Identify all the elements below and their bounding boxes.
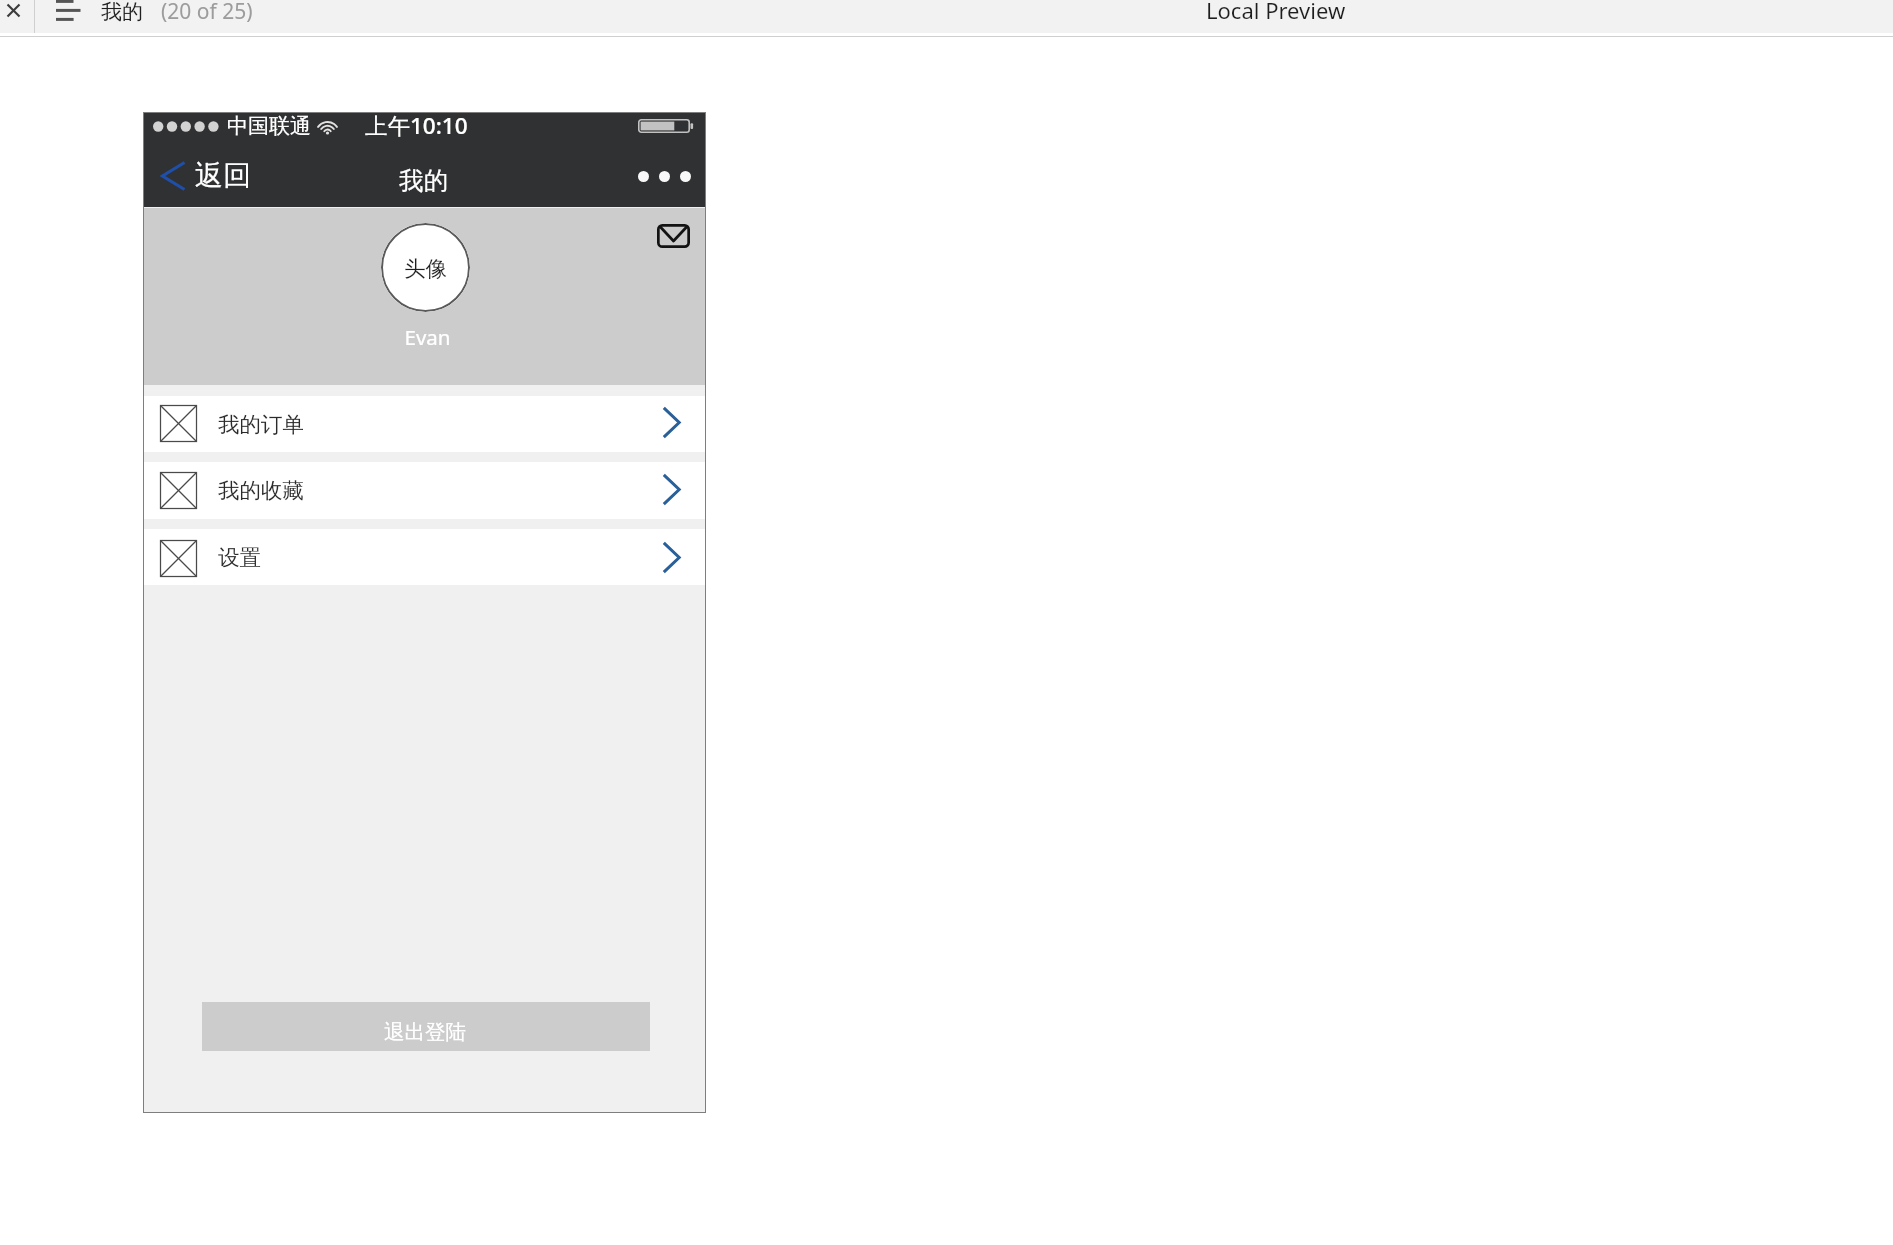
staticText: 退出登陆 (384, 1019, 466, 1045)
staticText: 头像 (404, 255, 447, 282)
staticText: 我的订单 (218, 411, 304, 438)
staticText: (20 of 25) (161, 0, 253, 26)
staticText: 我的收藏 (218, 477, 304, 504)
staticText: Evan (146, 323, 709, 351)
staticText: 上午10:10 (365, 110, 468, 141)
staticText: 我的 (101, 0, 143, 25)
button[interactable]: 头像 (381, 223, 470, 312)
button[interactable]: 返回 (157, 154, 251, 198)
button[interactable]: Messages (646, 217, 691, 248)
button[interactable]: 我的订单 (143, 396, 706, 452)
staticText: 设置 (218, 544, 261, 571)
staticText: 我的 (399, 165, 448, 196)
button[interactable]: More options (638, 162, 691, 190)
button[interactable]: Menu (52, 0, 84, 33)
button[interactable]: Close (0, 0, 27, 33)
staticText: 中国联通 (227, 113, 311, 139)
button[interactable]: 设置 (143, 529, 706, 585)
staticText: Local Preview (1206, 0, 1346, 25)
button[interactable]: 我的收藏 (143, 462, 706, 519)
staticText: 返回 (195, 158, 251, 193)
button[interactable]: 退出登陆 (202, 1002, 650, 1051)
